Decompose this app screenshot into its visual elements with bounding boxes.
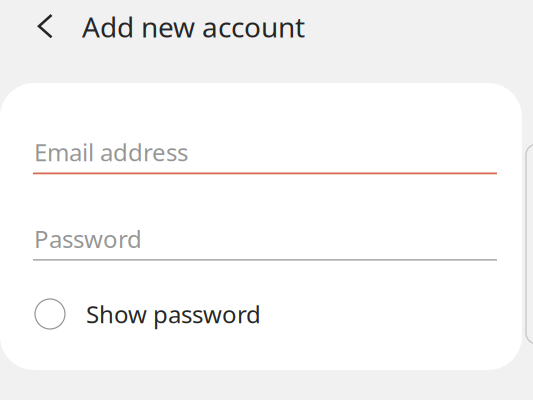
staticText: Show password <box>86 298 261 330</box>
staticText: Email address <box>34 136 188 168</box>
button[interactable]: Email address <box>33 136 497 182</box>
button[interactable]: Password <box>33 223 497 269</box>
staticText: Password <box>34 223 142 255</box>
button[interactable]: Back <box>23 4 67 48</box>
button[interactable]: Show password <box>35 292 325 336</box>
staticText: Add new account <box>82 8 305 45</box>
